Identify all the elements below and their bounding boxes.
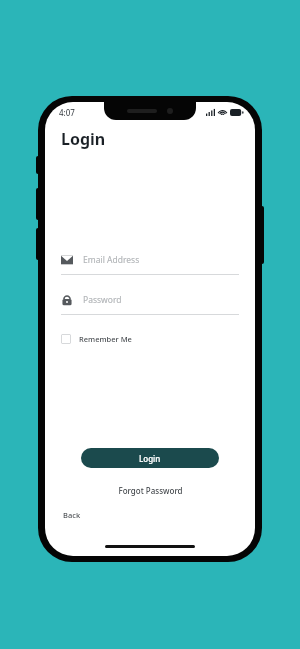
- button[interactable]: Forgot Password: [115, 482, 186, 499]
- staticText: Email Address: [83, 254, 140, 266]
- staticText: Login: [61, 128, 106, 150]
- staticText: Password: [83, 294, 122, 306]
- other: Email: [61, 254, 73, 266]
- button[interactable]: Back: [61, 508, 83, 522]
- button[interactable]: Login: [81, 448, 219, 468]
- button[interactable]: Email: [61, 251, 239, 275]
- staticText: Remember Me: [79, 334, 132, 344]
- staticText: Login: [139, 453, 161, 464]
- button[interactable]: Remember Me: [61, 332, 132, 346]
- staticText: 4:07: [59, 107, 75, 118]
- button[interactable]: Password: [61, 291, 239, 315]
- other: Password: [61, 294, 73, 306]
